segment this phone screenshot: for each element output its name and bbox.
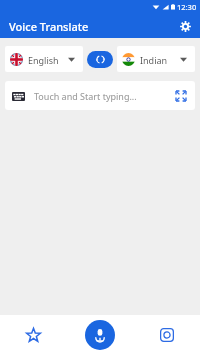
button[interactable]: Touch and Start typing... <box>5 81 195 110</box>
button[interactable]: Favorites <box>0 315 66 355</box>
staticText: 12:30 <box>177 2 197 12</box>
staticText: Touch and Start typing... <box>34 90 137 102</box>
button[interactable]: Settings <box>176 17 194 35</box>
button[interactable]: Camera translate <box>133 315 200 355</box>
button[interactable]: Indian <box>117 46 195 72</box>
staticText: English <box>28 54 59 66</box>
button[interactable]: Start voice input <box>85 320 115 350</box>
staticText: Voice Translate <box>9 19 89 34</box>
button[interactable]: Swap languages <box>87 51 113 68</box>
button[interactable]: English <box>5 46 83 72</box>
button[interactable]: Fullscreen <box>174 89 188 103</box>
staticText: Indian <box>140 54 168 66</box>
